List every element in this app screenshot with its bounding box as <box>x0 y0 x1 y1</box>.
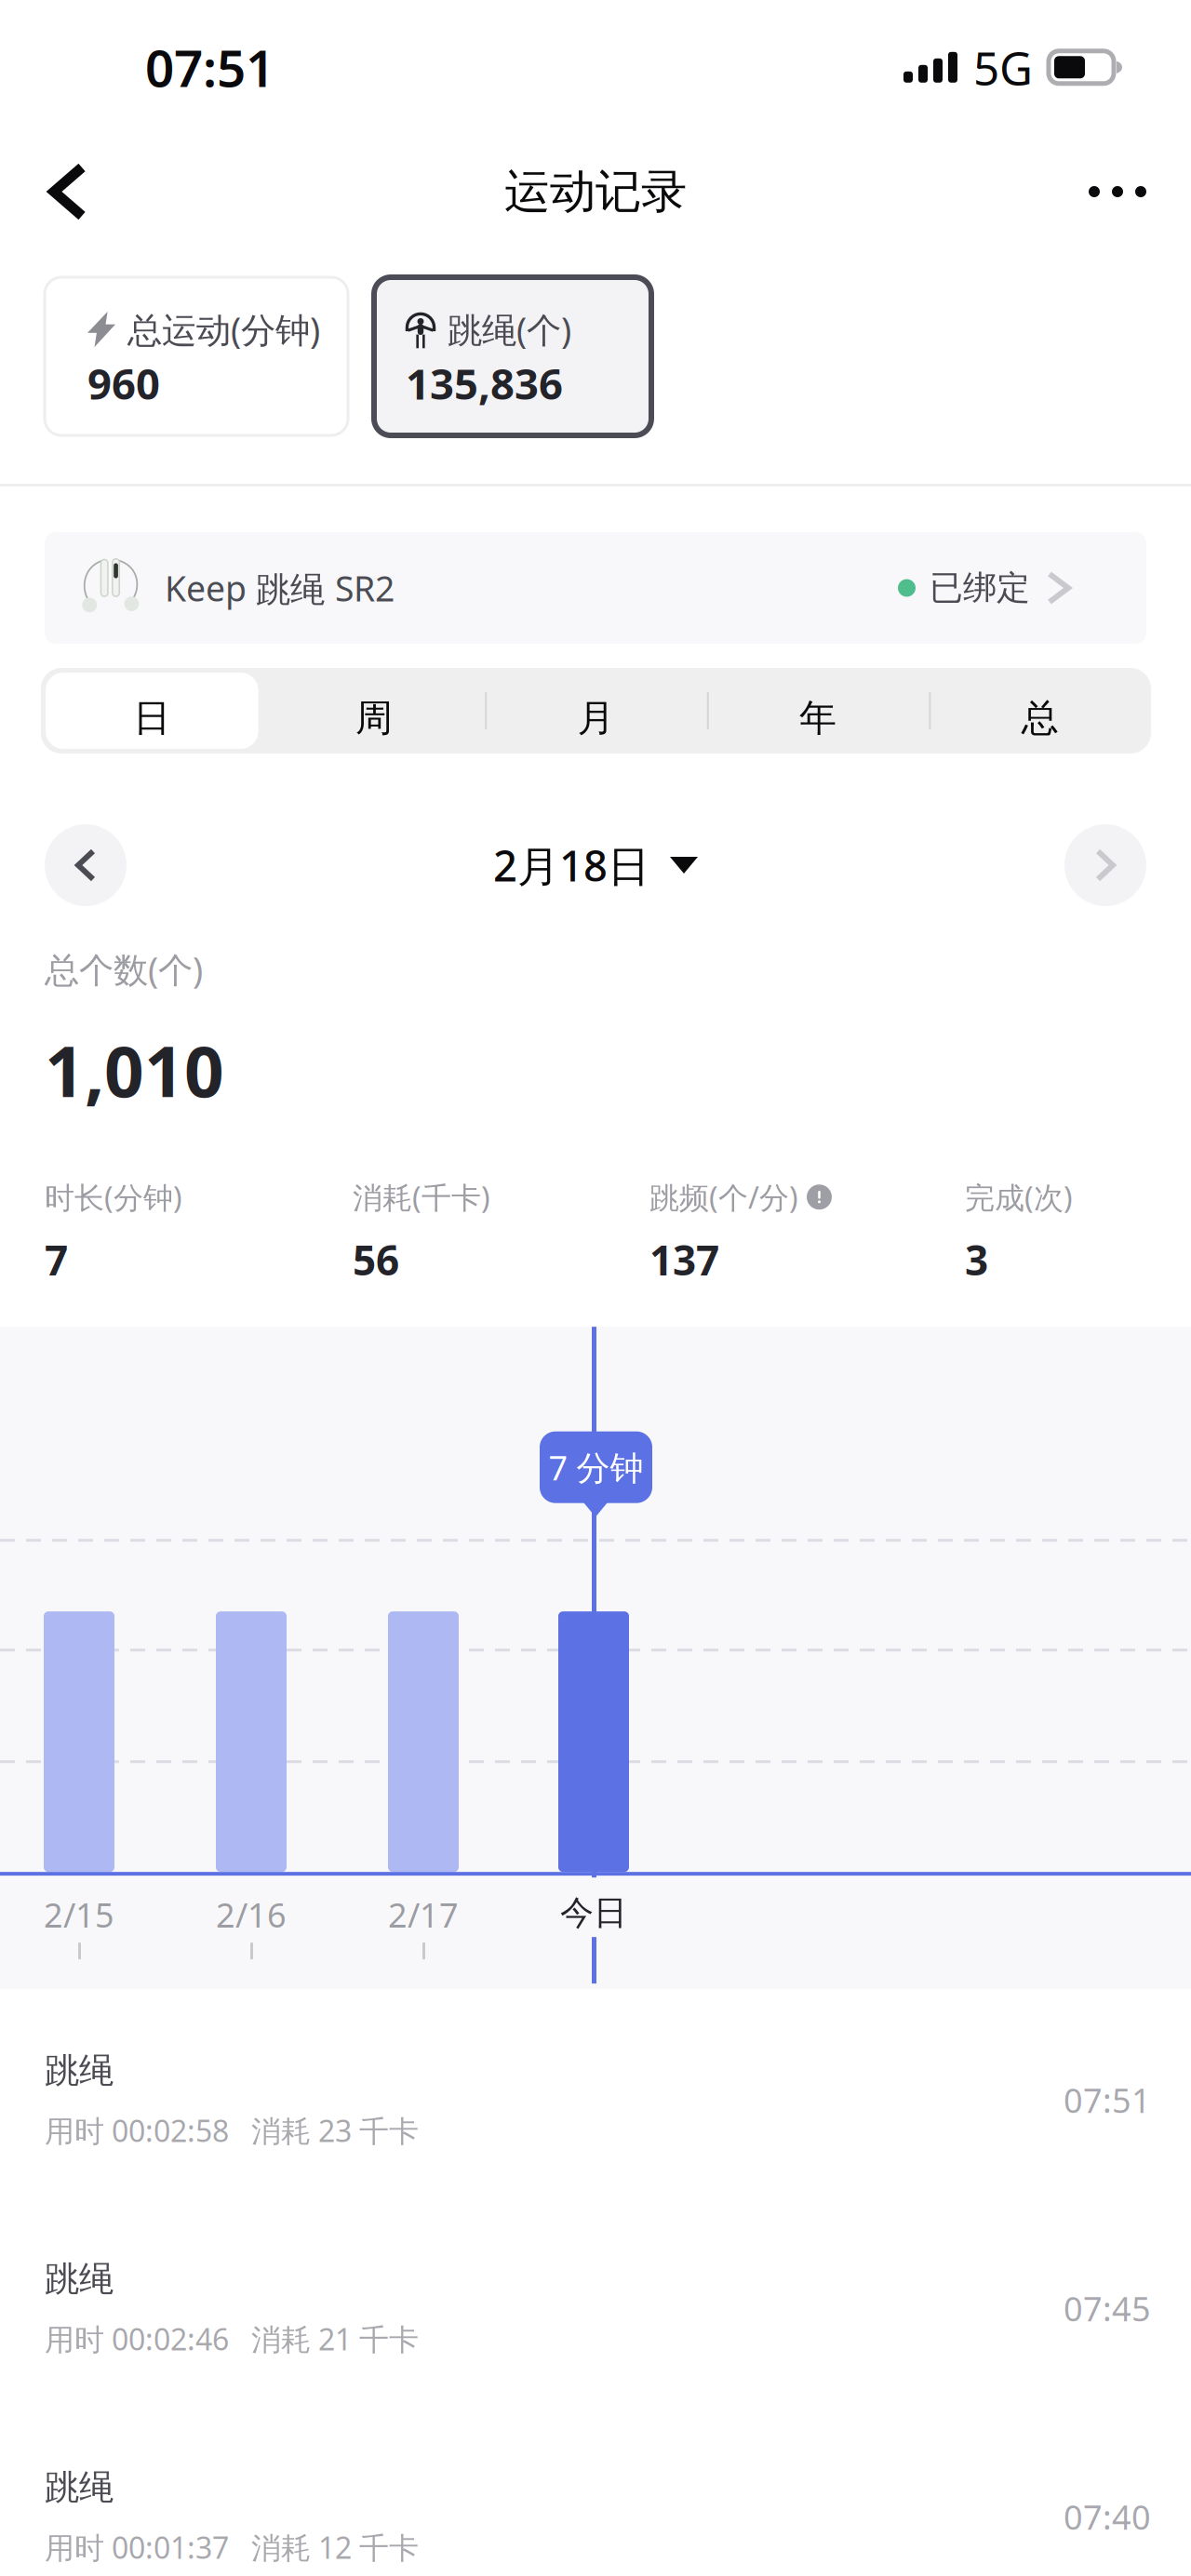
button[interactable]: Keep 跳绳 SR2 <box>45 532 1146 644</box>
staticText: 年 <box>799 695 837 741</box>
staticText: 7 <box>45 1232 68 1287</box>
staticText: 跳绳(个) <box>448 306 571 352</box>
button[interactable]: 上一天 <box>45 824 127 906</box>
staticText: 用时 00:01:37 消耗 12 千卡 <box>45 2527 419 2567</box>
staticText: 已绑定 <box>930 567 1030 609</box>
button[interactable]: 月 <box>485 668 707 754</box>
staticText: 完成(次) <box>965 1177 1073 1217</box>
staticText: 137 <box>649 1232 719 1287</box>
staticText: 消耗(千卡) <box>353 1177 490 1217</box>
staticText: 2/16 <box>216 1892 287 1937</box>
button[interactable]: 返回 <box>9 140 127 243</box>
staticText: 月 <box>577 695 615 741</box>
button[interactable]: 周 <box>263 668 485 754</box>
staticText: 2/15 <box>44 1892 114 1937</box>
staticText: 跳绳 <box>45 2049 114 2092</box>
staticText: 跳频(个/分) <box>649 1177 798 1217</box>
staticText: 3 <box>965 1232 988 1287</box>
button[interactable]: 总 <box>929 668 1151 754</box>
button[interactable]: 跳绳(个) <box>374 277 651 435</box>
staticText: 07:45 <box>1064 2286 1151 2330</box>
staticText: 用时 00:02:46 消耗 21 千卡 <box>45 2319 419 2359</box>
staticText: 2/17 <box>388 1892 459 1937</box>
button[interactable]: 跳绳 <box>0 1996 1191 2204</box>
staticText: 5G <box>973 37 1033 98</box>
staticText: 总运动(分钟) <box>127 306 320 352</box>
button[interactable]: 2月18日 <box>493 824 698 906</box>
button[interactable]: 更多 <box>1059 140 1176 243</box>
staticText: 跳绳 <box>45 2258 114 2301</box>
button[interactable]: 总运动(分钟) <box>45 277 348 435</box>
staticText: 总个数(个) <box>45 946 203 992</box>
staticText: 960 <box>87 355 160 411</box>
button[interactable]: 跳绳 <box>0 2412 1191 2576</box>
staticText: Keep 跳绳 SR2 <box>165 565 395 611</box>
button[interactable]: 年 <box>707 668 929 754</box>
staticText: 用时 00:02:58 消耗 23 千卡 <box>45 2111 419 2150</box>
staticText: 运动记录 <box>504 163 687 220</box>
staticText: 1,010 <box>45 1024 224 1116</box>
staticText: 2月18日 <box>493 837 649 893</box>
staticText: 今日 <box>560 1892 627 1934</box>
button[interactable]: 跳绳 <box>0 2204 1191 2412</box>
staticText: 时长(分钟) <box>45 1177 182 1217</box>
staticText: 135,836 <box>406 355 563 411</box>
staticText: 56 <box>353 1232 399 1287</box>
staticText: 07:40 <box>1064 2494 1151 2539</box>
staticText: 07:51 <box>145 33 274 101</box>
staticText: 7 分钟 <box>549 1445 643 1490</box>
staticText: 日 <box>133 695 171 741</box>
staticText: 周 <box>355 695 393 741</box>
button[interactable]: 日 <box>41 668 263 754</box>
staticText: 跳绳 <box>45 2466 114 2509</box>
button[interactable]: 下一天 <box>1064 824 1146 906</box>
staticText: 07:51 <box>1064 2078 1151 2122</box>
staticText: 总 <box>1021 695 1059 741</box>
